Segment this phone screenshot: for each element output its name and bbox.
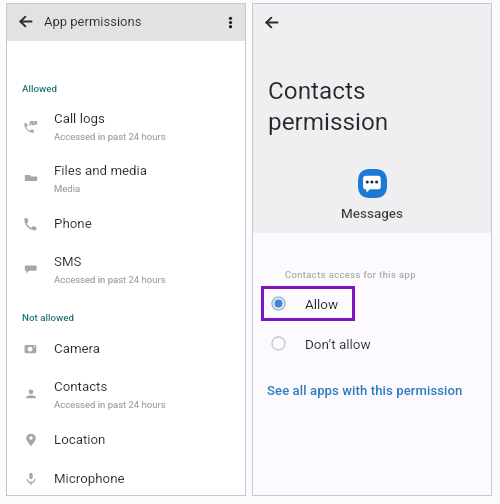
staticText: Contacts bbox=[54, 379, 108, 395]
staticText: Call logs bbox=[54, 111, 105, 127]
staticText: Location bbox=[54, 432, 106, 448]
button[interactable]: More options bbox=[225, 17, 236, 28]
button[interactable]: Phone bbox=[6, 204, 246, 243]
staticText: Accessed in past 24 hours bbox=[54, 274, 166, 285]
staticText: Contacts permission bbox=[268, 76, 389, 136]
staticText: SMS bbox=[54, 254, 82, 270]
staticText: Media bbox=[54, 183, 81, 194]
button[interactable]: Camera bbox=[6, 329, 246, 368]
staticText: Allow bbox=[305, 296, 339, 312]
button[interactable]: Microphone bbox=[6, 459, 246, 498]
button[interactable]: Don’t allow bbox=[261, 326, 381, 361]
button[interactable]: Contacts bbox=[6, 368, 246, 420]
staticText: Don’t allow bbox=[305, 336, 371, 352]
button[interactable]: Back bbox=[258, 11, 282, 35]
button[interactable]: Back bbox=[13, 9, 37, 33]
staticText: Accessed in past 24 hours bbox=[54, 399, 166, 410]
staticText: Messages bbox=[341, 205, 404, 221]
button[interactable]: SMS bbox=[6, 243, 246, 295]
staticText: Microphone bbox=[54, 471, 125, 487]
button[interactable]: Files and media bbox=[6, 152, 246, 204]
staticText: Files and media bbox=[54, 163, 148, 179]
staticText: Allowed bbox=[22, 83, 58, 94]
staticText: App permissions bbox=[44, 14, 142, 29]
button[interactable]: Allow bbox=[261, 286, 355, 321]
staticText: Not allowed bbox=[22, 312, 75, 323]
staticText: Phone bbox=[54, 216, 92, 232]
staticText: Camera bbox=[54, 341, 101, 357]
button[interactable]: See all apps with this permission bbox=[267, 383, 463, 398]
staticText: Accessed in past 24 hours bbox=[54, 131, 166, 142]
button[interactable]: Location bbox=[6, 420, 246, 459]
staticText: Contacts access for this app bbox=[285, 269, 416, 280]
button[interactable]: Call logs bbox=[6, 100, 246, 152]
